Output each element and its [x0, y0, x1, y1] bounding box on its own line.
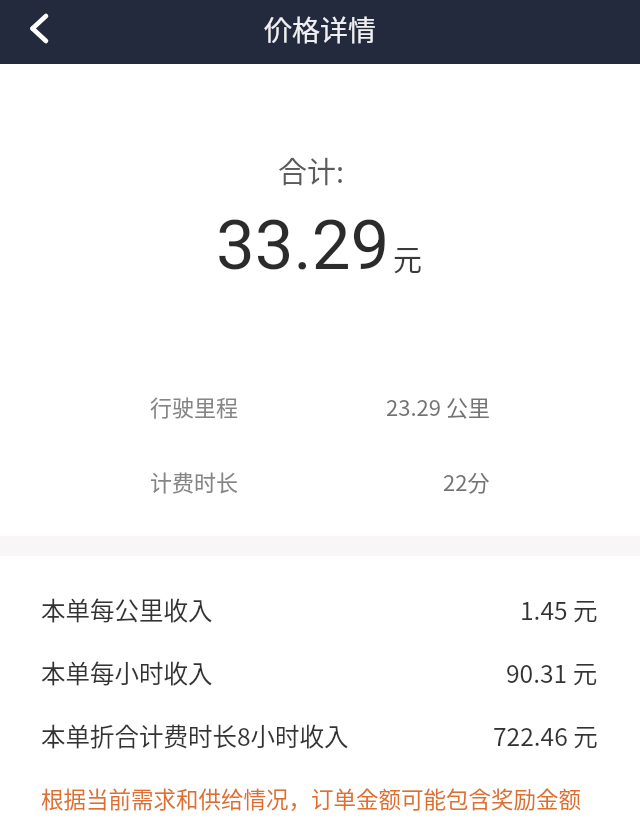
staticText: 90.31 元 [506, 655, 598, 690]
staticText: 33.29 [216, 205, 390, 286]
staticText: 价格详情 [264, 9, 377, 50]
staticText: 本单折合计费时长8小时收入 [41, 718, 349, 753]
staticText: 合计: [278, 149, 345, 191]
staticText: 本单每小时收入 [41, 655, 213, 690]
staticText: 23.29 公里 [386, 390, 490, 422]
staticText: 本单每公里收入 [41, 592, 213, 627]
staticText: 行驶里程 [150, 390, 239, 422]
button[interactable]: 本单每小时收入 [0, 655, 640, 690]
button[interactable]: Back [0, 0, 76, 64]
button[interactable]: 本单折合计费时长8小时收入 [0, 718, 640, 753]
button[interactable]: 本单每公里收入 [0, 592, 640, 627]
staticText: 元 [393, 237, 423, 279]
staticText: 计费时长 [150, 465, 239, 497]
staticText: 1.45 元 [520, 592, 598, 627]
staticText: 22分 [443, 465, 490, 497]
staticText: 722.46 元 [493, 718, 598, 753]
staticText: 根据当前需求和供给情况，订单金额可能包含奖励金额 [41, 782, 582, 815]
